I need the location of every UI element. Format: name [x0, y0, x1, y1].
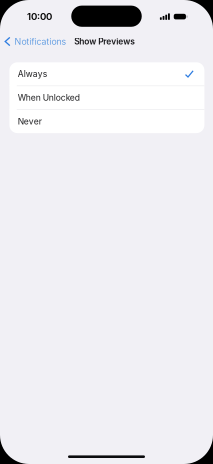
button[interactable]: Never — [9, 110, 204, 133]
button[interactable]: Notifications — [0, 32, 66, 51]
staticText: When Unlocked — [18, 92, 80, 103]
staticText: Never — [18, 116, 42, 127]
staticText: Show Previews — [74, 36, 135, 47]
staticText: 10:00 — [27, 11, 52, 22]
staticText: Notifications — [14, 36, 66, 47]
staticText: Always — [18, 69, 48, 79]
button[interactable]: Always — [9, 62, 204, 85]
button[interactable]: When Unlocked — [9, 86, 204, 109]
